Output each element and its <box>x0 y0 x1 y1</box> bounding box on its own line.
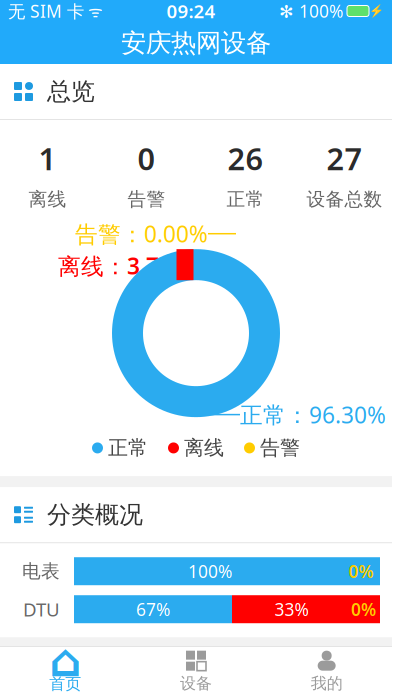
staticText: 100% <box>188 560 232 583</box>
staticText: 无 SIM 卡 <box>8 0 84 22</box>
staticText: 0% <box>351 598 376 621</box>
staticText: 总览 <box>47 77 95 106</box>
staticText: ᯤ <box>84 0 103 22</box>
staticText: 告警：0.00% <box>75 219 208 249</box>
staticText: 67% <box>136 598 170 621</box>
staticText: 正常 <box>226 188 264 211</box>
staticText: 26 <box>227 138 263 179</box>
button[interactable]: ⌂ <box>0 647 131 696</box>
staticText: 09:24 <box>166 0 215 23</box>
staticText: 离线 <box>28 188 66 211</box>
staticText: 电表 <box>22 560 60 583</box>
staticText: 告警 <box>127 188 165 211</box>
staticText: 离线 <box>184 436 224 460</box>
staticText: DTU <box>23 597 60 622</box>
staticText: 0 <box>137 138 155 179</box>
staticText: 设备总数 <box>306 188 382 211</box>
staticText: 离线：3.70% <box>58 251 192 281</box>
button[interactable]: 我的 <box>261 647 392 696</box>
button[interactable]: 设备 <box>131 647 261 696</box>
staticText: 告警 <box>260 436 300 460</box>
staticText: 27 <box>326 138 362 179</box>
staticText: ✻ 100% <box>279 0 343 22</box>
staticText: 正常 <box>108 436 148 460</box>
staticText: ⌂ <box>49 635 81 686</box>
staticText: 我的 <box>311 674 343 693</box>
staticText: 0% <box>348 560 373 583</box>
staticText: 安庆热网设备 <box>121 27 271 58</box>
staticText: 分类概况 <box>47 500 143 529</box>
staticText: 33% <box>274 598 308 621</box>
staticText: ⚡ <box>369 4 384 18</box>
staticText: 正常：96.30% <box>240 400 386 430</box>
staticText: 设备 <box>180 674 212 693</box>
staticText: 首页 <box>49 674 81 694</box>
staticText: 1 <box>38 138 56 179</box>
